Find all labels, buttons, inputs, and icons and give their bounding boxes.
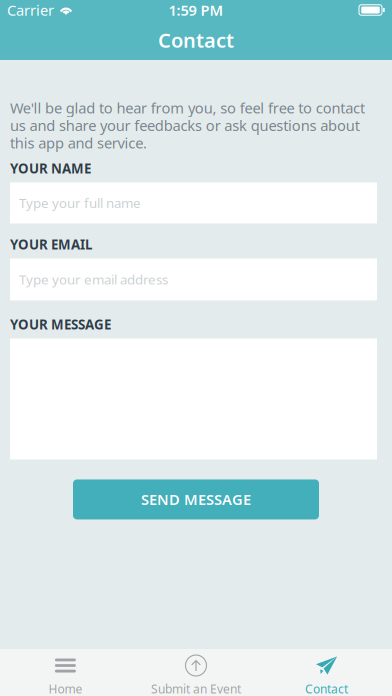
staticText: Submit an Event bbox=[151, 681, 241, 696]
button[interactable]: Contact bbox=[261, 643, 392, 696]
button[interactable]: Type your full name bbox=[10, 182, 377, 223]
button[interactable]: Type your email address bbox=[10, 258, 377, 300]
staticText: YOUR NAME bbox=[10, 160, 91, 177]
staticText: 1:59 PM bbox=[168, 0, 223, 20]
staticText: Contact bbox=[158, 27, 234, 53]
staticText: Home bbox=[48, 681, 82, 696]
staticText: SEND MESSAGE bbox=[141, 490, 251, 509]
staticText: Type your full name bbox=[19, 194, 141, 212]
staticText: Contact bbox=[305, 681, 348, 696]
staticText: Carrier bbox=[7, 0, 54, 20]
button[interactable]: Submit an Event bbox=[131, 643, 261, 696]
staticText: Type your email address bbox=[19, 271, 168, 288]
button[interactable]: SEND MESSAGE bbox=[73, 479, 319, 519]
button[interactable]: Home bbox=[0, 643, 131, 696]
staticText: We'll be glad to hear from you, so feel … bbox=[10, 98, 365, 152]
staticText: YOUR MESSAGE bbox=[10, 316, 111, 333]
staticText: YOUR EMAIL bbox=[10, 236, 92, 253]
